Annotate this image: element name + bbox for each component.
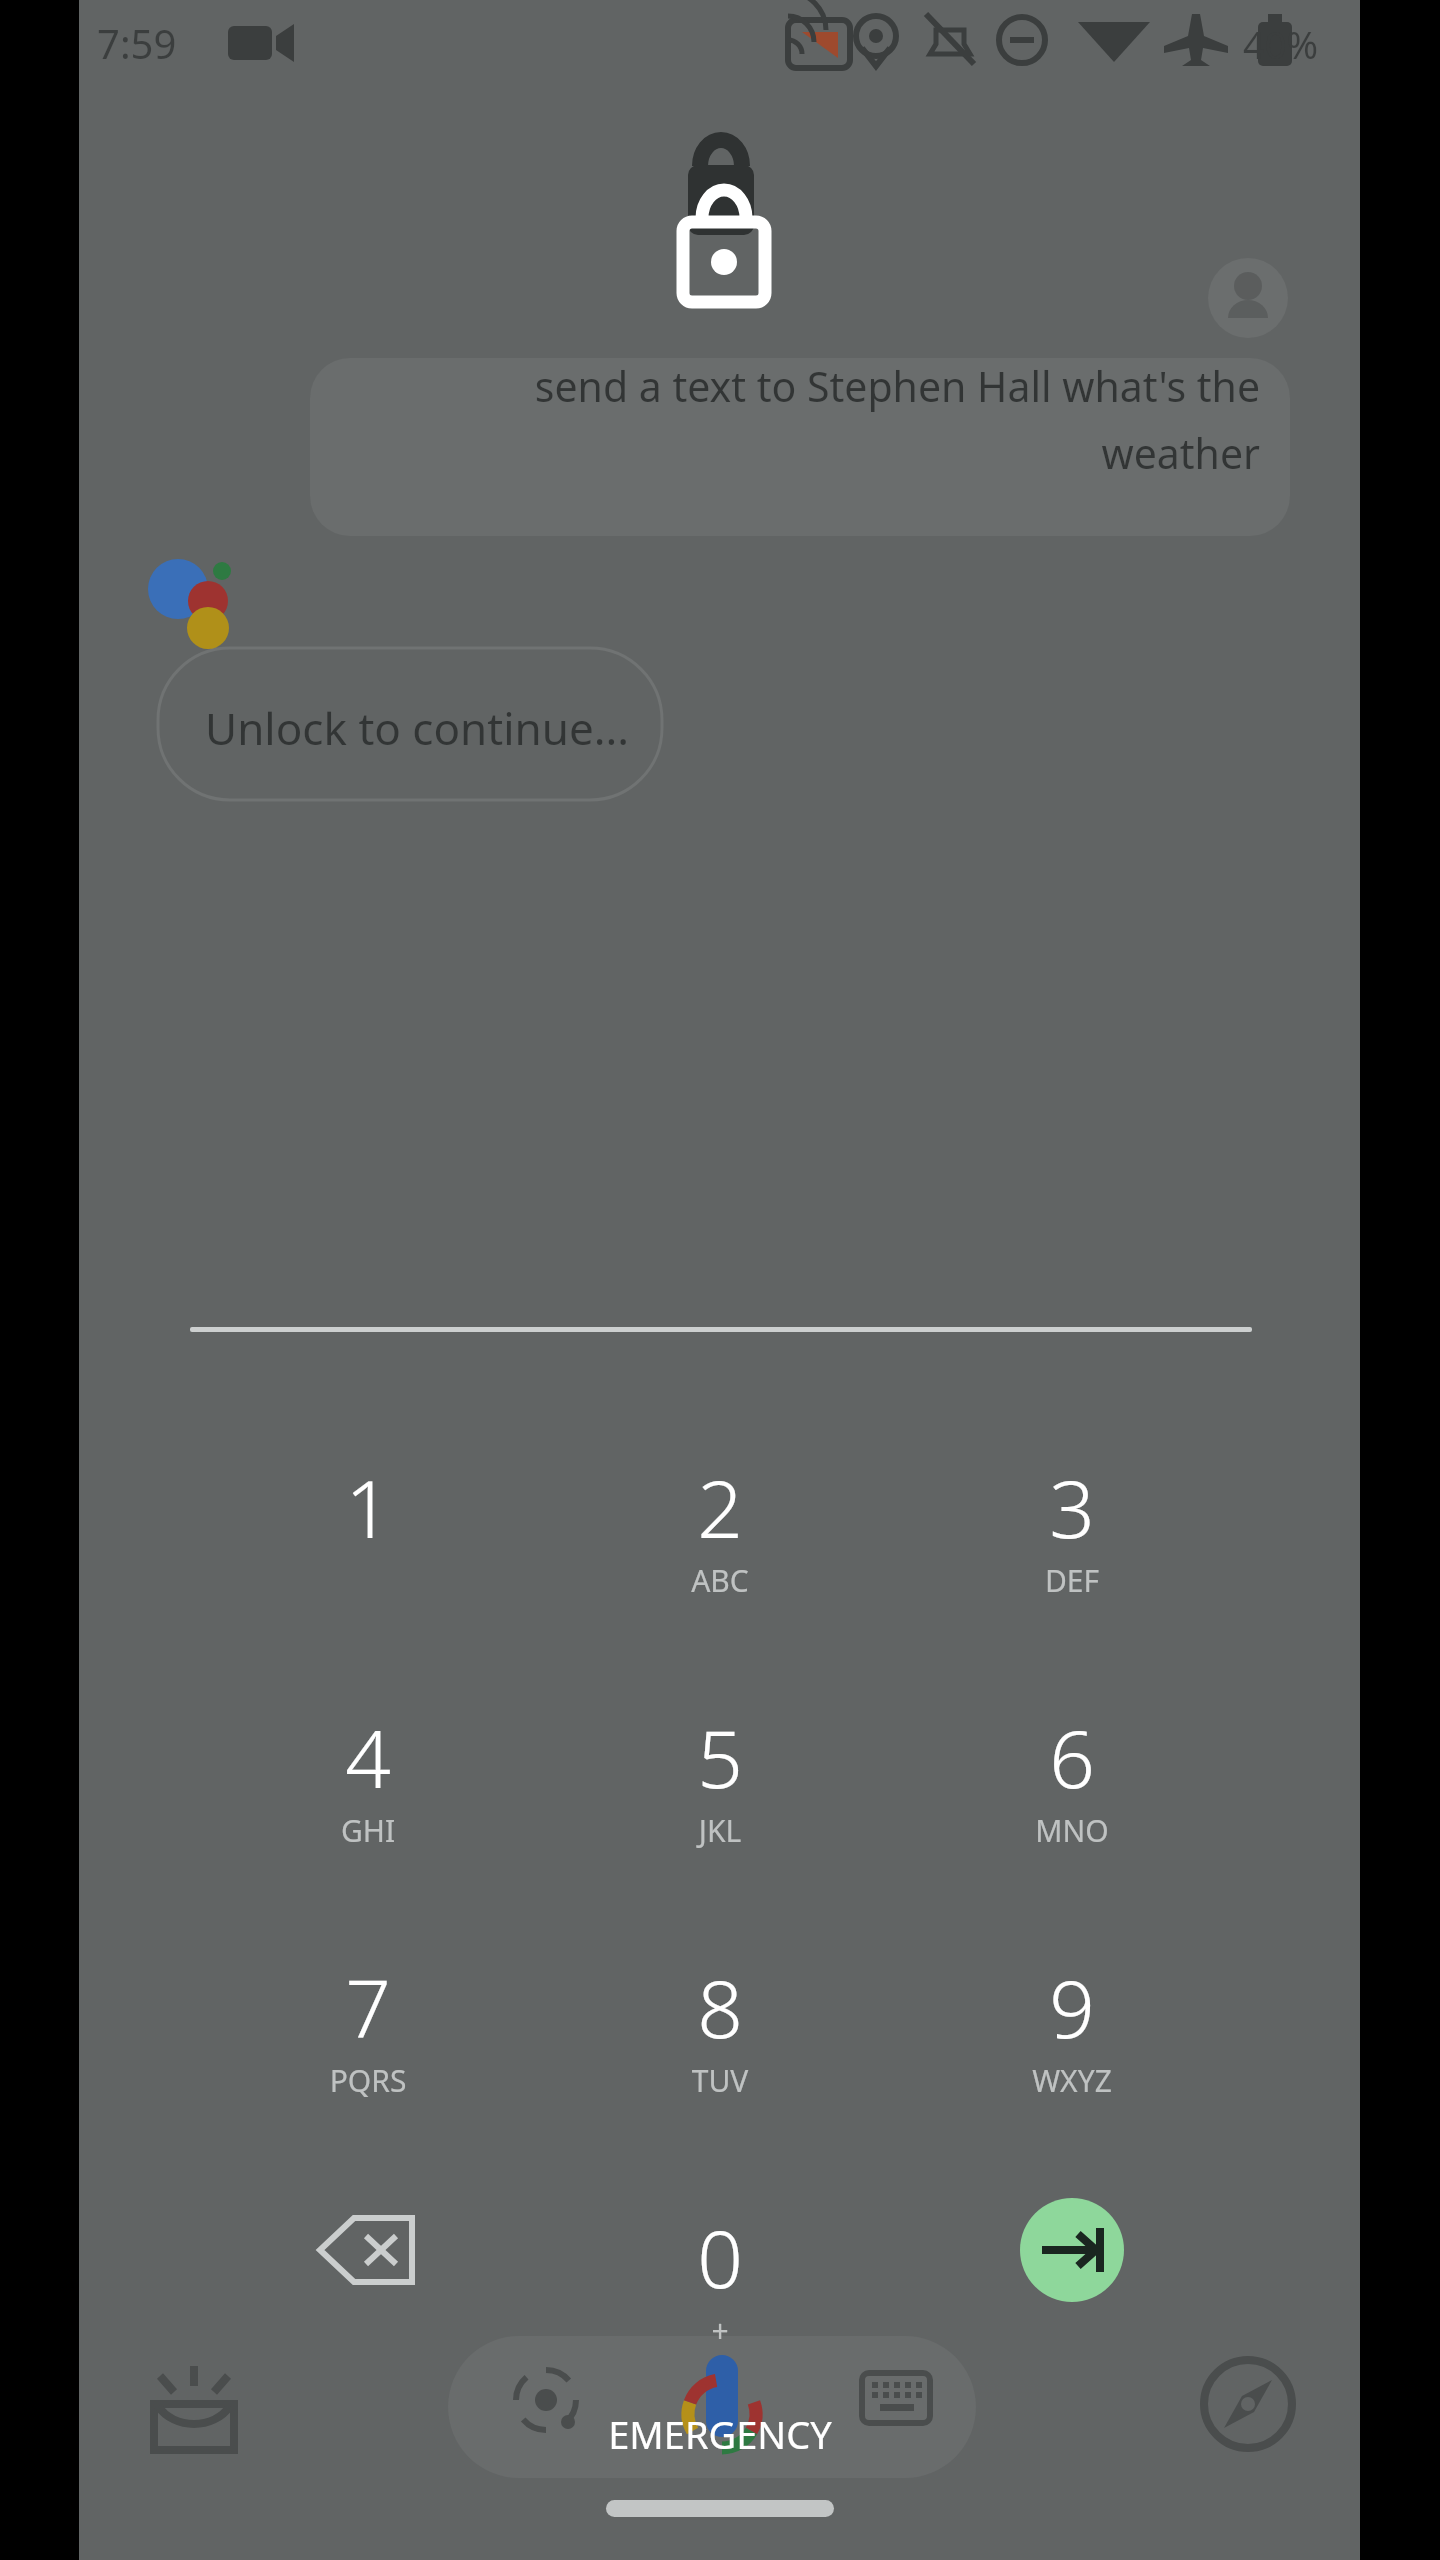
button[interactable]: Keyboard bbox=[845, 2360, 955, 2470]
staticText: ABC bbox=[560, 1560, 880, 1601]
staticText: JKL bbox=[560, 1810, 880, 1851]
staticText: TUV bbox=[560, 2060, 880, 2101]
staticText: 3 bbox=[912, 1452, 1232, 1561]
button[interactable]: 6 bbox=[912, 1702, 1232, 1932]
button[interactable]: send a text to Stephen Hall what's the w… bbox=[300, 358, 1260, 508]
staticText: + bbox=[560, 2310, 880, 2351]
button[interactable]: Enter bbox=[1000, 2180, 1150, 2320]
staticText: 7:59 bbox=[97, 16, 177, 70]
staticText: send a text to Stephen Hall what's the w… bbox=[300, 358, 1260, 481]
staticText: GHI bbox=[208, 1810, 528, 1851]
button[interactable]: EMERGENCY bbox=[540, 2408, 900, 2478]
staticText: 9 bbox=[912, 1952, 1232, 2061]
staticText: 1 bbox=[208, 1452, 528, 1561]
staticText: DEF bbox=[912, 1560, 1232, 1601]
staticText: 8 bbox=[560, 1952, 880, 2061]
button[interactable]: 9 bbox=[912, 1952, 1232, 2182]
staticText: 0 bbox=[560, 2202, 880, 2311]
staticText: WXYZ bbox=[912, 2060, 1232, 2101]
staticText: MNO bbox=[912, 1810, 1232, 1851]
staticText: 2 bbox=[560, 1452, 880, 1561]
button[interactable]: Compass bbox=[1190, 2360, 1310, 2480]
button[interactable]: 3 bbox=[912, 1452, 1232, 1682]
staticText: 5 bbox=[560, 1702, 880, 1811]
staticText: PQRS bbox=[208, 2060, 528, 2101]
button[interactable]: 2 bbox=[560, 1452, 880, 1682]
staticText: EMERGENCY bbox=[540, 2408, 900, 2460]
staticText: Unlock to continue... bbox=[205, 698, 630, 758]
button[interactable]: 4 bbox=[208, 1702, 528, 1932]
staticText: 4 bbox=[208, 1702, 528, 1811]
button[interactable]: 8 bbox=[560, 1952, 880, 2182]
button[interactable]: Unlock to continue... bbox=[205, 698, 655, 778]
staticText: 7 bbox=[208, 1952, 528, 2061]
button[interactable]: Backspace bbox=[296, 2180, 446, 2320]
button[interactable]: Google Lens bbox=[500, 2360, 610, 2470]
staticText: 6 bbox=[912, 1702, 1232, 1811]
staticText: 40% bbox=[1243, 18, 1319, 70]
button[interactable]: 0 bbox=[560, 2202, 880, 2432]
button[interactable]: Flashlight bbox=[140, 2360, 260, 2480]
button[interactable]: 1 bbox=[208, 1452, 528, 1682]
button[interactable]: 5 bbox=[560, 1702, 880, 1932]
button[interactable]: 7 bbox=[208, 1952, 528, 2182]
